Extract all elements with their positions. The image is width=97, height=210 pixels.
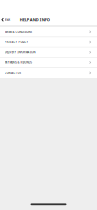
button[interactable]: DELIVERY INFORMATION	[0, 47, 97, 58]
button[interactable]: PRIVACY POLICY	[0, 37, 97, 47]
staticText: TERMS & CONDITIONS	[5, 30, 32, 34]
staticText: PRIVACY POLICY	[5, 40, 29, 44]
staticText: DELIVERY INFORMATION	[5, 50, 36, 54]
button[interactable]: Back	[0, 16, 12, 23]
staticText: HELP AND INFO	[20, 17, 50, 22]
button[interactable]: TERMS & CONDITIONS	[0, 27, 97, 37]
button[interactable]: CONTACT US	[0, 68, 97, 78]
staticText: Back	[5, 18, 10, 21]
staticText: CONTACT US	[5, 71, 21, 75]
button[interactable]: PAYMENTS & REFUNDS	[0, 58, 97, 68]
staticText: PAYMENTS & REFUNDS	[5, 61, 32, 64]
button[interactable]: HELP AND INFO	[12, 16, 50, 23]
